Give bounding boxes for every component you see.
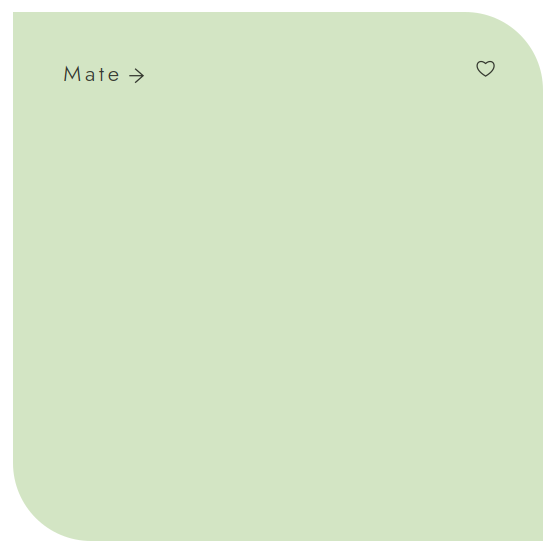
button[interactable]: Favourite: [464, 46, 508, 90]
button[interactable]: Mate: [63, 51, 163, 95]
staticText: Mate: [63, 57, 119, 89]
